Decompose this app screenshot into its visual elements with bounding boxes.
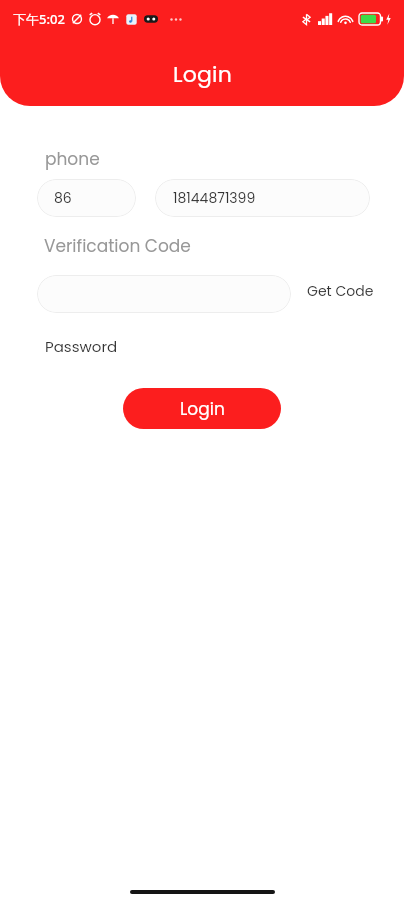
staticText: 下午5:02 <box>13 10 65 28</box>
staticText: 18144871399 <box>173 188 256 208</box>
button[interactable]: Verification code <box>37 275 291 313</box>
button[interactable]: Country calling code 86 <box>37 179 136 217</box>
other: Music playing <box>125 13 138 26</box>
staticText: Get Code <box>307 281 374 301</box>
other: Notification <box>106 12 120 26</box>
other: Silent mode <box>70 12 84 26</box>
other: Headphones connected <box>144 12 158 26</box>
other: More notifications <box>169 13 183 26</box>
staticText: Login <box>180 397 225 421</box>
other: Bluetooth on <box>300 13 313 26</box>
staticText: 86 <box>54 188 72 208</box>
staticText: phone <box>45 147 100 171</box>
staticText: Verification Code <box>44 234 191 258</box>
staticText: Password <box>45 336 118 357</box>
other: Alarm set <box>88 12 102 26</box>
other: Battery charging <box>359 13 383 25</box>
staticText: Login <box>173 59 232 90</box>
button[interactable]: Phone number <box>155 179 370 217</box>
button[interactable]: Login <box>123 388 281 429</box>
button[interactable]: Get Code <box>307 275 374 313</box>
other: Wi-Fi <box>338 13 353 25</box>
other: Mobile signal <box>318 13 332 25</box>
